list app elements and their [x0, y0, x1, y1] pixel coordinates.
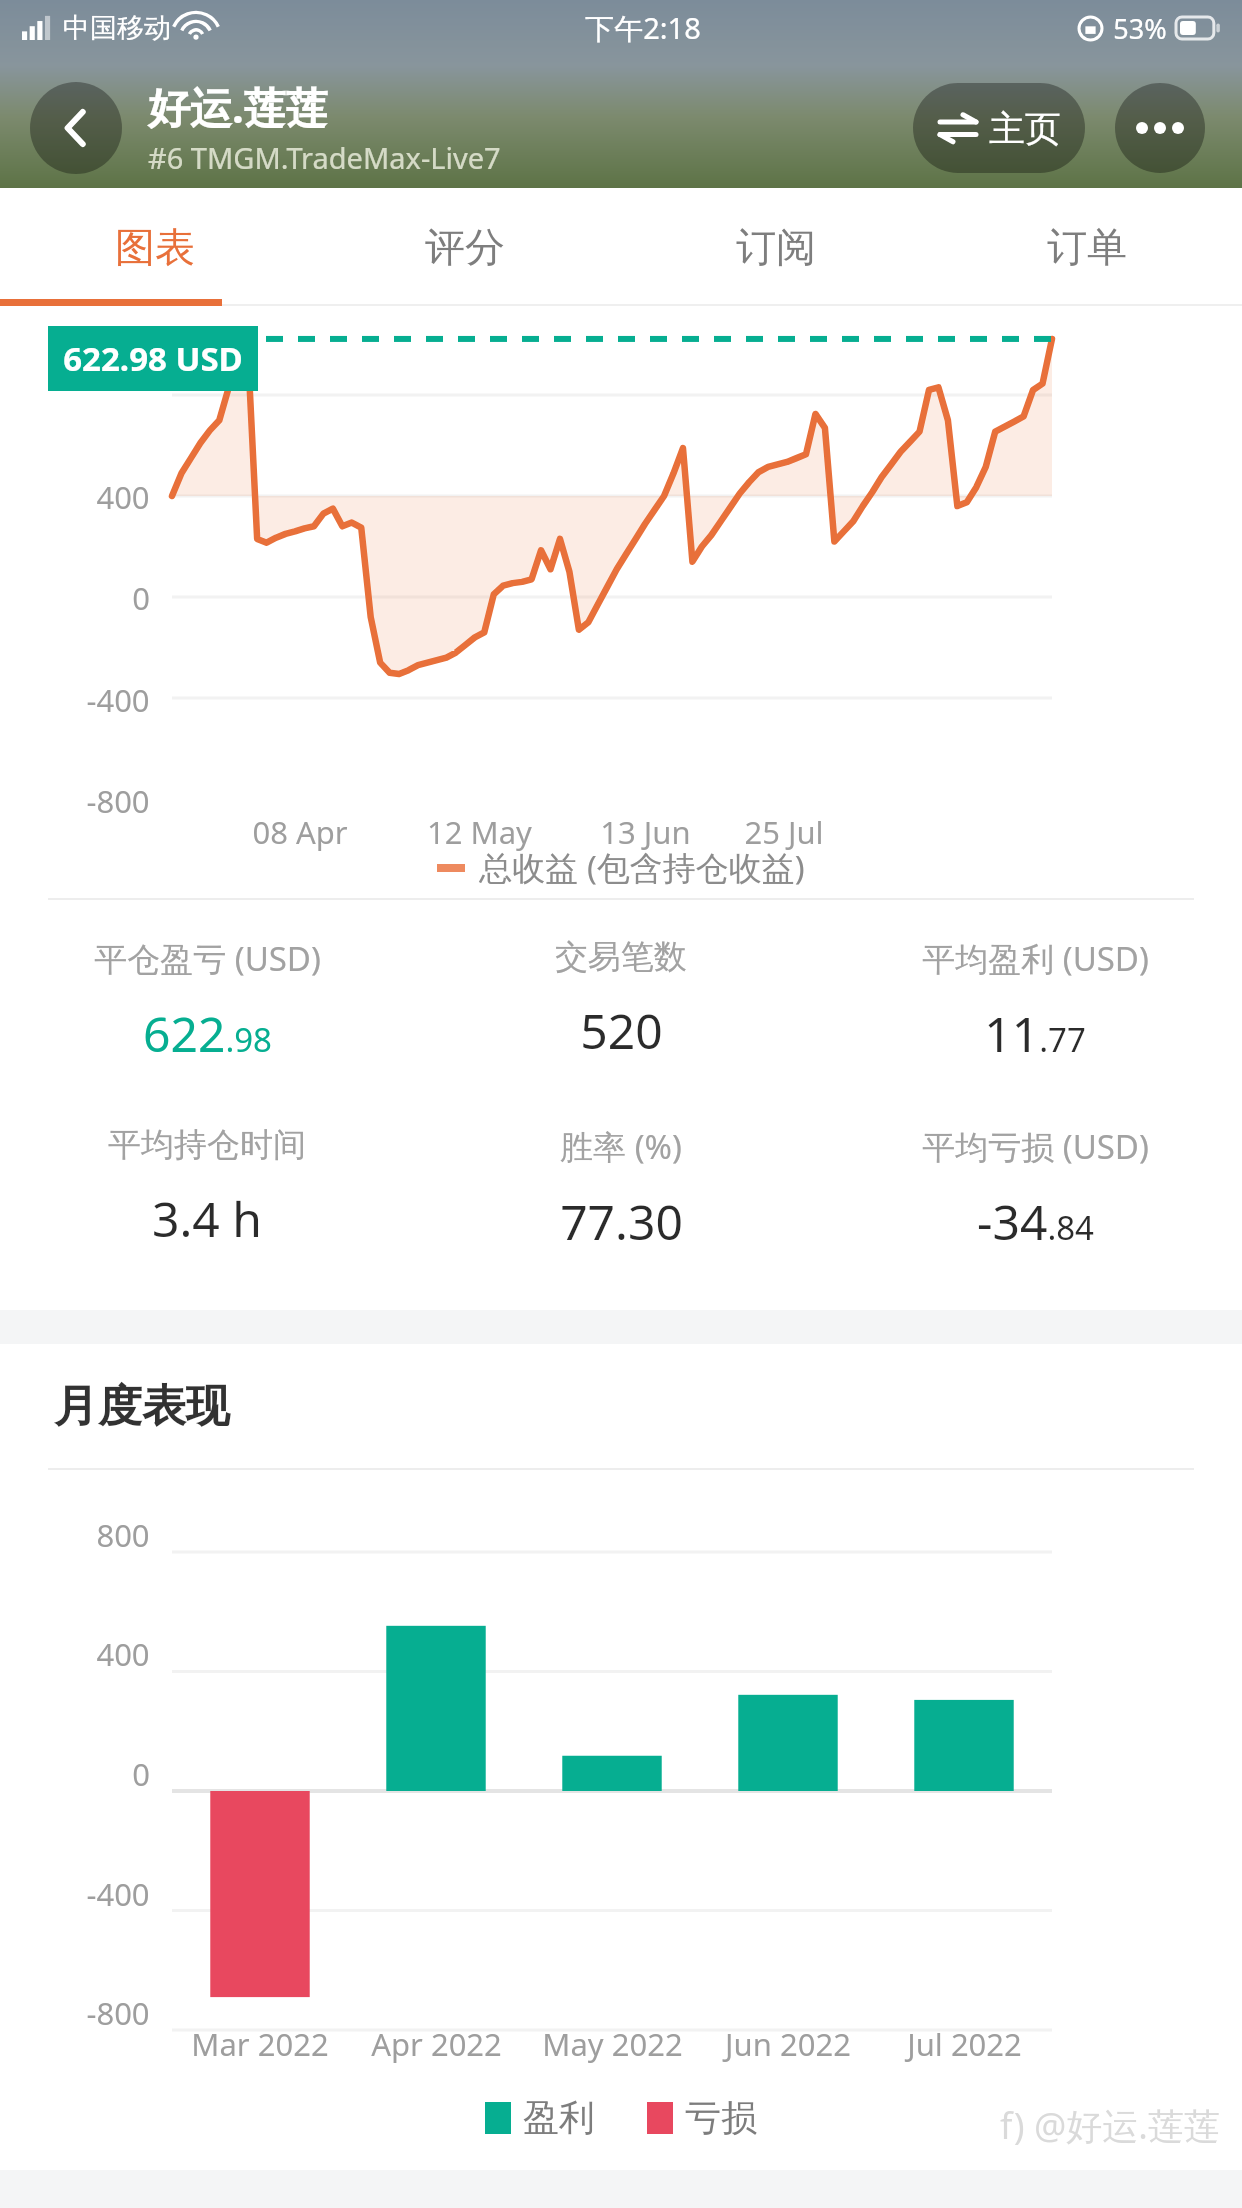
staticText: 11.77 — [984, 1001, 1086, 1066]
staticText: 622.98 — [143, 1001, 272, 1066]
staticText: 订阅 — [736, 222, 816, 272]
staticText: 中国移动 — [63, 11, 171, 45]
staticText: 622.98 USD — [63, 336, 243, 381]
staticText: Jul 2022 — [907, 2023, 1022, 2065]
staticText: -800 — [86, 780, 150, 822]
staticText: 平均盈利 (USD) — [922, 936, 1149, 981]
button[interactable]: 主页 — [913, 83, 1085, 173]
staticText: 平均亏损 (USD) — [922, 1124, 1149, 1169]
staticText: 0 — [132, 1753, 150, 1795]
staticText: f) @好运.莲莲 — [1000, 2101, 1220, 2150]
staticText: -400 — [86, 679, 150, 721]
staticText: 盈利 — [523, 2095, 595, 2140]
staticText: 亏损 — [685, 2095, 757, 2140]
staticText: 月度表现 — [54, 1379, 230, 1434]
staticText: 胜率 (%) — [560, 1124, 682, 1169]
button[interactable]: More options — [1115, 83, 1205, 173]
button[interactable]: 订阅 — [620, 188, 931, 306]
staticText: 评分 — [425, 222, 505, 272]
staticText: 主页 — [989, 106, 1061, 151]
staticText: 400 — [96, 1633, 150, 1675]
staticText: 25 Jul — [744, 811, 824, 853]
staticText: 图表 — [115, 222, 195, 272]
staticText: Apr 2022 — [371, 2023, 502, 2065]
staticText: 0 — [132, 577, 150, 619]
staticText: 订单 — [1047, 222, 1127, 272]
staticText: 08 Apr — [252, 811, 348, 853]
staticText: 53% — [1113, 10, 1167, 47]
staticText: 3.4 h — [152, 1186, 262, 1251]
staticText: Jun 2022 — [725, 2023, 851, 2065]
staticText: 77.30 — [560, 1189, 683, 1254]
staticText: Mar 2022 — [191, 2023, 329, 2065]
staticText: May 2022 — [542, 2023, 683, 2065]
staticText: 下午2:18 — [585, 8, 701, 48]
button[interactable]: 评分 — [310, 188, 620, 306]
button[interactable]: Back — [30, 82, 122, 174]
staticText: #6 TMGM.TradeMax-Live7 — [148, 138, 501, 177]
staticText: 好运.莲莲 — [148, 78, 328, 135]
staticText: 520 — [580, 998, 663, 1063]
staticText: 13 Jun — [600, 811, 691, 853]
staticText: -400 — [86, 1873, 150, 1915]
staticText: 平均持仓时间 — [108, 1124, 306, 1166]
staticText: -34.84 — [977, 1189, 1094, 1254]
staticText: 平仓盈亏 (USD) — [94, 936, 321, 981]
staticText: -800 — [86, 1992, 150, 2034]
staticText: 总收益 (包含持仓收益) — [479, 845, 805, 890]
button[interactable]: 订单 — [931, 188, 1242, 306]
staticText: 400 — [96, 476, 150, 518]
staticText: 12 May — [427, 811, 532, 853]
button[interactable]: 图表 — [0, 188, 310, 306]
staticText: 800 — [96, 1514, 150, 1556]
staticText: 交易笔数 — [555, 936, 687, 978]
